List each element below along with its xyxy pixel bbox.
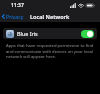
button[interactable]: Blue Iris	[3, 28, 97, 39]
staticText: Privacy	[6, 13, 24, 20]
staticText: Local Network	[30, 13, 70, 21]
staticText: 11:37	[11, 2, 24, 9]
button[interactable]: Privacy	[0, 12, 28, 21]
staticText: Blue Iris	[17, 30, 38, 37]
staticText: Apps that have requested permission to f…	[6, 43, 94, 59]
button[interactable]: Local network access toggle, on	[81, 30, 94, 38]
